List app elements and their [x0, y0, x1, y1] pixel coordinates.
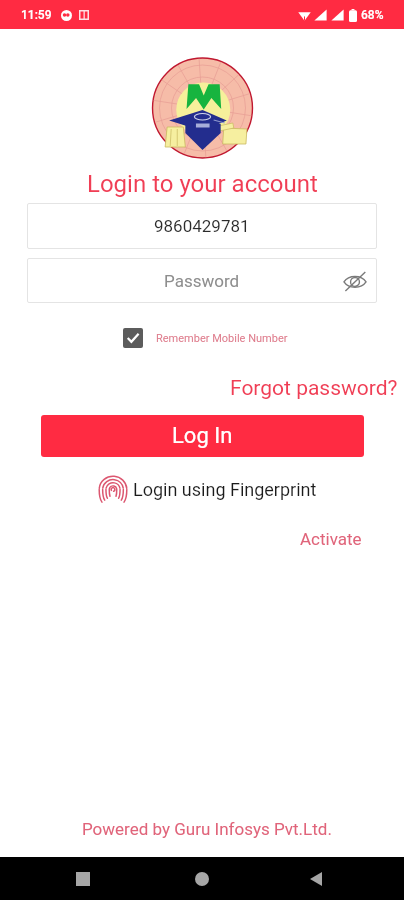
staticText: Activate: [300, 529, 362, 549]
button[interactable]: Password: [27, 258, 377, 303]
staticText: 11:59: [21, 8, 52, 22]
button[interactable]: Recents: [62, 858, 104, 900]
button[interactable]: Home: [181, 858, 223, 900]
button[interactable]: Show password: [341, 267, 369, 295]
staticText: Log In: [172, 423, 233, 449]
button[interactable]: 9860429781: [27, 203, 377, 249]
staticText: 9860429781: [154, 216, 250, 236]
staticText: 68%: [361, 8, 384, 22]
staticText: Powered by Guru Infosys Pvt.Ltd.: [82, 819, 332, 839]
staticText: Login to your account: [87, 170, 318, 198]
button[interactable]: Back: [295, 858, 337, 900]
button[interactable]: Login using Fingerprint: [98, 472, 317, 507]
staticText: Forgot password?: [230, 376, 398, 401]
button[interactable]: Activate: [296, 527, 366, 551]
staticText: Remember Mobile Number: [156, 332, 288, 345]
button[interactable]: Log In: [41, 415, 364, 457]
staticText: Password: [164, 271, 240, 291]
staticText: Login using Fingerprint: [133, 479, 317, 500]
button[interactable]: Forgot password?: [226, 374, 402, 403]
button[interactable]: Remember Mobile Number: [123, 328, 288, 348]
